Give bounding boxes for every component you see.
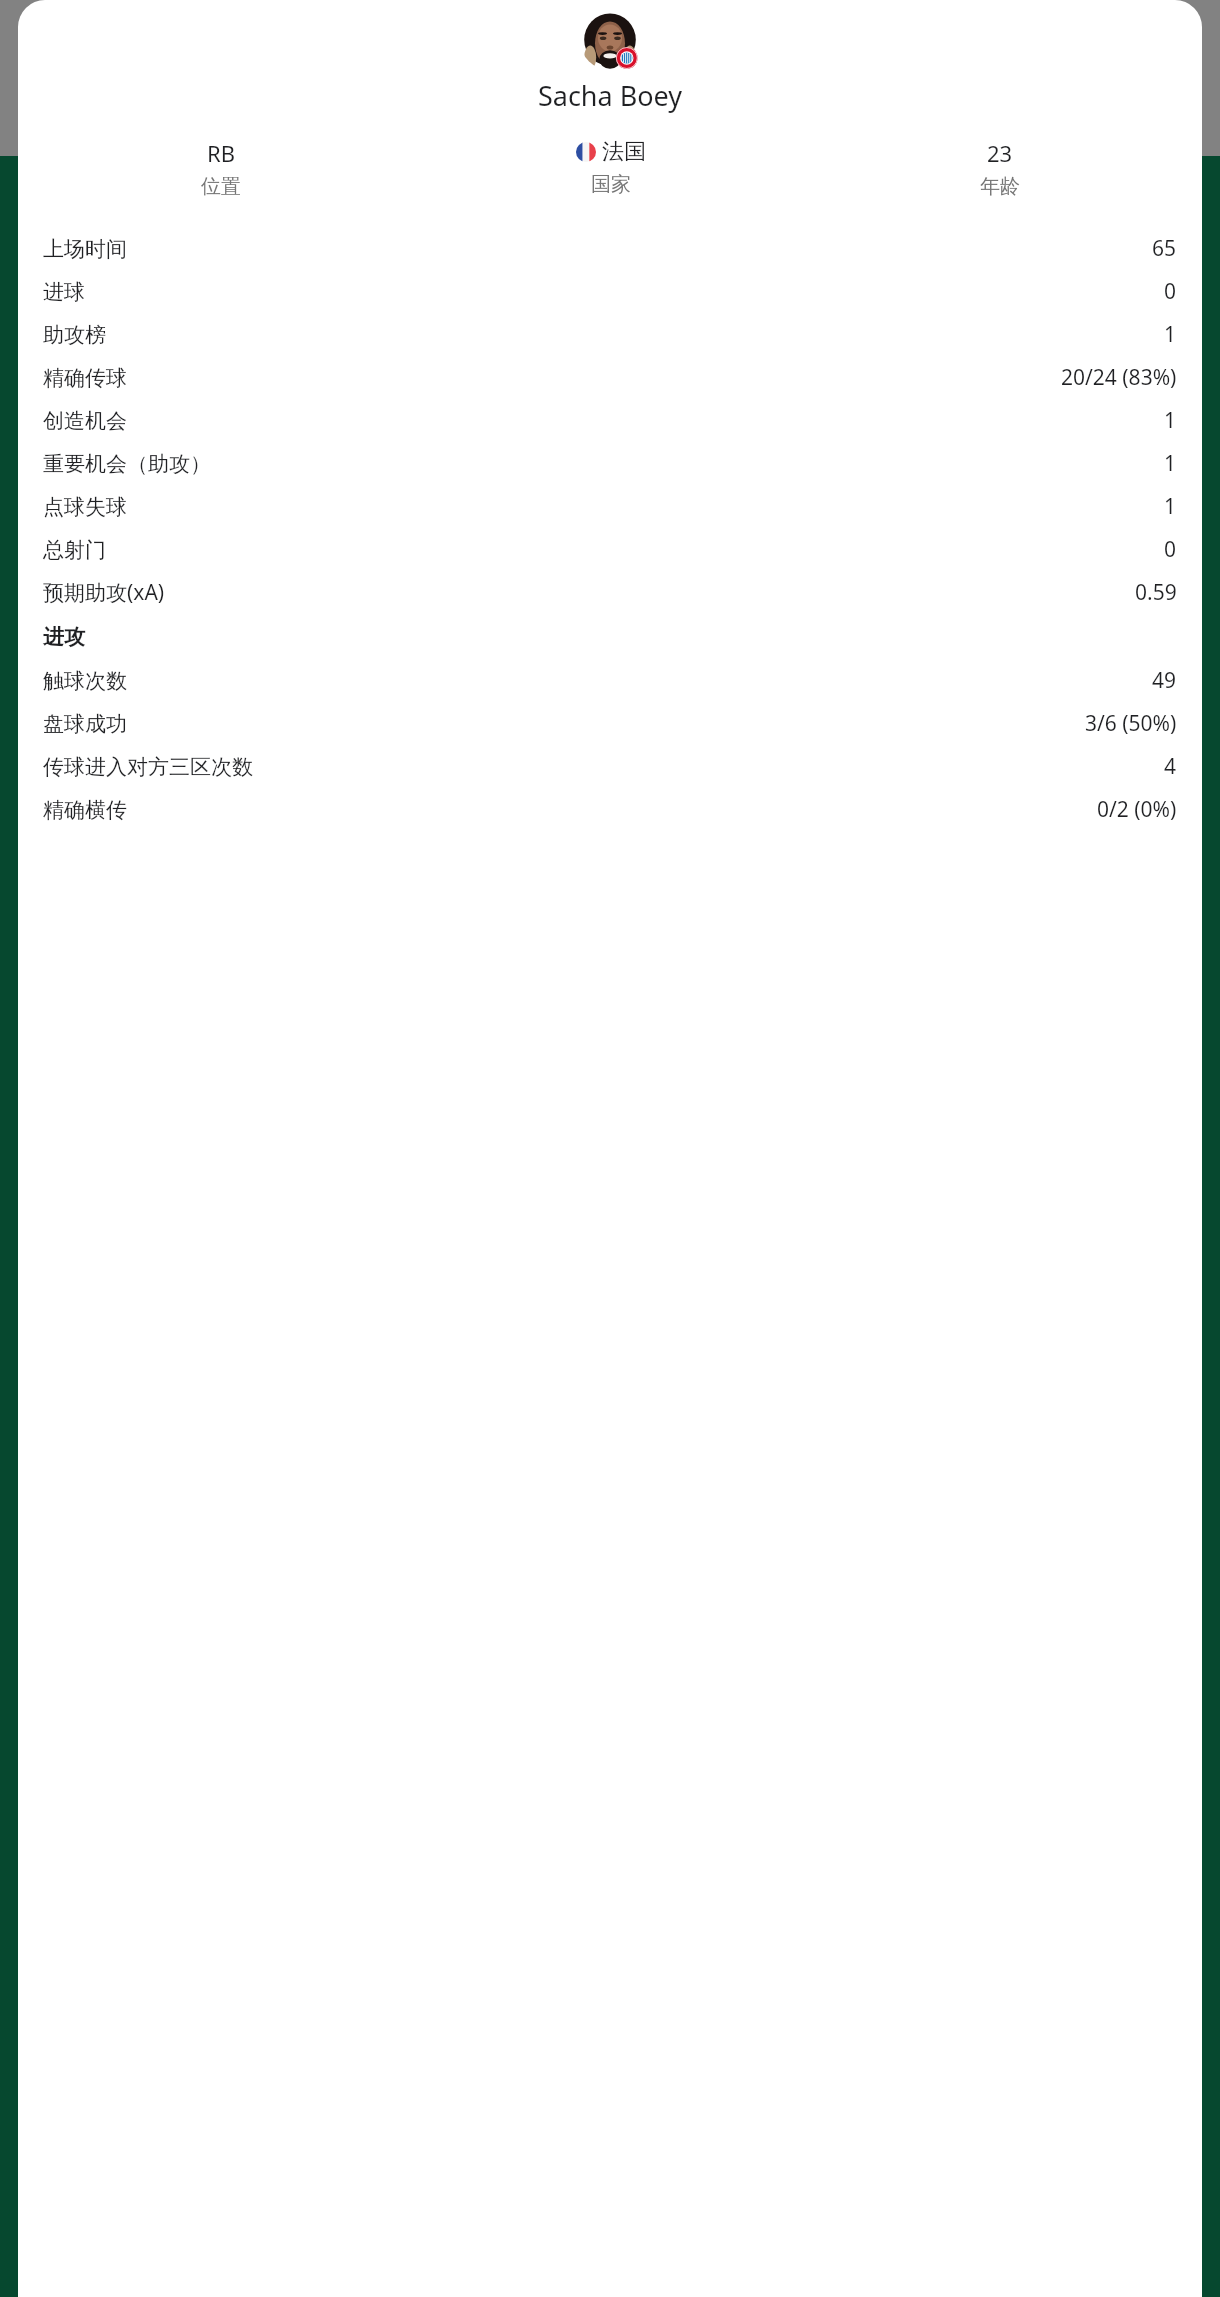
- button[interactable]: 预期助攻(xA): [18, 571, 1202, 614]
- staticText: 精确传球: [43, 365, 127, 391]
- button[interactable]: 精确横传: [18, 788, 1202, 831]
- staticText: 传球进入对方三区次数: [43, 754, 253, 780]
- button[interactable]: RB: [26, 138, 416, 199]
- staticText: 重要机会（助攻）: [43, 451, 211, 477]
- staticText: 盘球成功: [43, 711, 127, 737]
- staticText: 位置: [201, 174, 241, 199]
- button[interactable]: 23: [805, 138, 1194, 199]
- staticText: 总射门: [43, 537, 106, 563]
- button[interactable]: 点球失球: [18, 485, 1202, 528]
- staticText: 助攻榜: [43, 322, 106, 348]
- button[interactable]: 传球进入对方三区次数: [18, 745, 1202, 788]
- staticText: 1: [1164, 492, 1177, 521]
- staticText: 1: [1164, 320, 1177, 349]
- button[interactable]: 总射门: [18, 528, 1202, 571]
- staticText: 0: [1164, 535, 1177, 564]
- button[interactable]: 法国: [416, 138, 805, 197]
- staticText: 精确横传: [43, 797, 127, 823]
- staticText: 点球失球: [43, 494, 127, 520]
- staticText: 预期助攻(xA): [43, 578, 165, 607]
- staticText: 触球次数: [43, 668, 127, 694]
- staticText: 49: [1152, 666, 1177, 695]
- button[interactable]: 重要机会（助攻）: [18, 442, 1202, 485]
- staticText: 0/2 (0%): [1097, 795, 1177, 824]
- button[interactable]: 上场时间: [18, 227, 1202, 270]
- button[interactable]: 精确传球: [18, 356, 1202, 399]
- staticText: Sacha Boey: [18, 77, 1202, 114]
- button[interactable]: 进球: [18, 270, 1202, 313]
- staticText: 20/24 (83%): [1061, 363, 1177, 392]
- button[interactable]: 触球次数: [18, 659, 1202, 702]
- staticText: 进攻: [43, 624, 85, 650]
- staticText: 0.59: [1135, 578, 1177, 607]
- staticText: 1: [1164, 406, 1177, 435]
- staticText: 0: [1164, 277, 1177, 306]
- staticText: 年龄: [980, 174, 1020, 199]
- button[interactable]: 创造机会: [18, 399, 1202, 442]
- staticText: 1: [1164, 449, 1177, 478]
- staticText: 进球: [43, 279, 85, 305]
- staticText: 上场时间: [43, 236, 127, 262]
- staticText: 国家: [591, 172, 631, 197]
- button[interactable]: Player photo: [580, 10, 640, 70]
- staticText: 65: [1152, 234, 1177, 263]
- button[interactable]: 盘球成功: [18, 702, 1202, 745]
- staticText: 23: [987, 138, 1013, 168]
- staticText: 3/6 (50%): [1085, 709, 1177, 738]
- staticText: 创造机会: [43, 408, 127, 434]
- button[interactable]: 助攻榜: [18, 313, 1202, 356]
- staticText: 法国: [602, 138, 646, 166]
- staticText: RB: [207, 138, 235, 168]
- staticText: 4: [1164, 752, 1177, 781]
